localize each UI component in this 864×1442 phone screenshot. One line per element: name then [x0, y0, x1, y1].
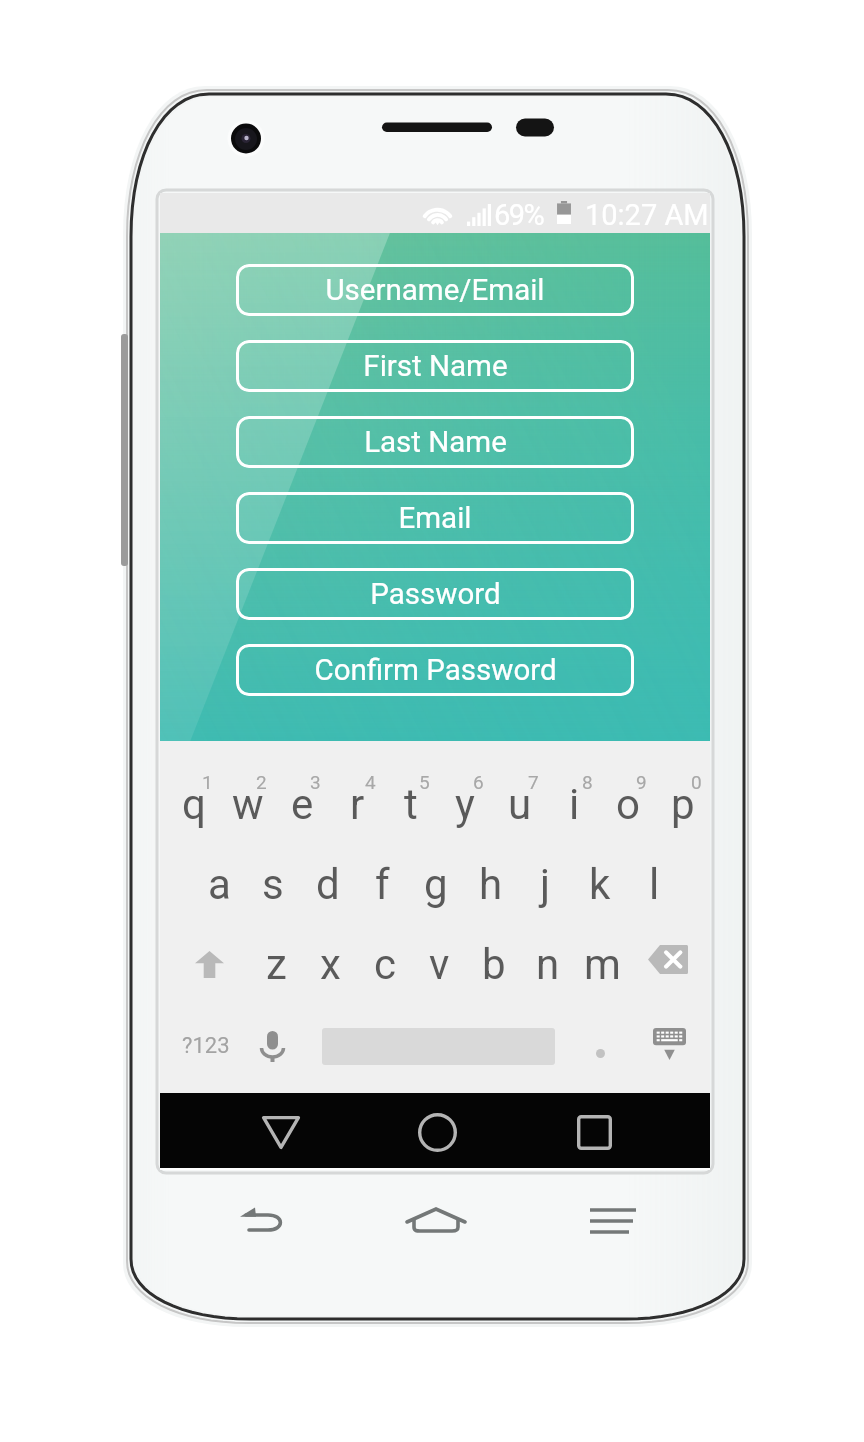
button[interactable]: Password [236, 568, 634, 620]
button[interactable]: c [358, 929, 412, 999]
button[interactable]: Shift [175, 929, 243, 999]
staticText: p [671, 780, 695, 829]
staticText: y [455, 780, 475, 829]
staticText: Password [370, 577, 501, 612]
staticText: 9 [636, 771, 647, 793]
button[interactable]: x [303, 929, 357, 999]
staticText: k [589, 860, 611, 909]
button[interactable]: v [412, 929, 466, 999]
staticText: s [262, 860, 284, 909]
staticText: x [320, 940, 341, 989]
staticText: Last Name [364, 425, 507, 460]
staticText: 69% [494, 198, 544, 232]
button[interactable]: 0 [656, 749, 710, 829]
staticText: Email [398, 501, 472, 536]
staticText: 1 [202, 771, 213, 793]
staticText: 5 [419, 771, 430, 793]
staticText: g [424, 860, 448, 909]
staticText: f [375, 860, 390, 909]
staticText: 4 [365, 771, 376, 793]
button[interactable] [570, 1018, 630, 1088]
button[interactable]: j [518, 849, 572, 919]
button[interactable]: g [409, 849, 463, 919]
staticText: Confirm Password [314, 653, 557, 688]
button[interactable]: Backspace [634, 924, 702, 994]
staticText: 0 [691, 771, 702, 793]
staticText: 6 [473, 771, 484, 793]
staticText: t [404, 780, 418, 829]
button[interactable]: 7 [493, 749, 547, 829]
button[interactable]: Confirm Password [236, 644, 634, 696]
staticText: j [540, 860, 551, 909]
staticText: ?123 [182, 1033, 230, 1059]
staticText: 7 [528, 771, 539, 793]
staticText: 2 [256, 771, 267, 793]
staticText: First Name [363, 349, 508, 384]
staticText: v [429, 940, 450, 989]
staticText: 8 [582, 771, 593, 793]
button[interactable]: Recent apps [560, 1098, 628, 1166]
button[interactable]: 4 [330, 749, 384, 829]
button[interactable]: f [355, 849, 409, 919]
staticText: w [232, 780, 264, 829]
button[interactable]: h [464, 849, 518, 919]
button[interactable]: 2 [221, 749, 275, 829]
button[interactable]: Last Name [236, 416, 634, 468]
staticText: u [508, 780, 532, 829]
button[interactable]: 6 [438, 749, 492, 829]
staticText: b [482, 940, 506, 989]
button[interactable]: 3 [275, 749, 329, 829]
staticText: a [208, 860, 231, 909]
button[interactable]: 5 [384, 749, 438, 829]
button[interactable]: Hide keyboard [247, 1098, 315, 1166]
button[interactable]: m [575, 929, 629, 999]
staticText: h [479, 860, 503, 909]
staticText: i [569, 780, 580, 829]
staticText: l [649, 860, 660, 909]
staticText: Username/Email [325, 273, 545, 308]
staticText: o [616, 780, 640, 829]
staticText: c [374, 940, 396, 989]
staticText: q [182, 780, 206, 829]
button[interactable]: b [467, 929, 521, 999]
button[interactable]: l [627, 849, 681, 919]
button[interactable]: Hide keyboard [631, 1009, 707, 1079]
button[interactable]: ?123 [168, 1011, 244, 1081]
button[interactable]: Home [403, 1098, 471, 1166]
staticText: z [266, 940, 287, 989]
button[interactable]: Email [236, 492, 634, 544]
button[interactable]: Voice input [239, 1011, 305, 1081]
staticText: m [584, 940, 621, 989]
button[interactable]: First Name [236, 340, 634, 392]
button[interactable]: a [192, 849, 246, 919]
button[interactable]: 1 [167, 749, 221, 829]
button[interactable] [318, 1011, 558, 1081]
button[interactable]: n [521, 929, 575, 999]
staticText: n [536, 940, 560, 989]
button[interactable]: 8 [547, 749, 601, 829]
button[interactable]: 9 [601, 749, 655, 829]
button[interactable]: k [573, 849, 627, 919]
staticText: 10:27 AM [585, 198, 709, 232]
staticText: r [350, 780, 365, 829]
button[interactable]: z [249, 929, 303, 999]
staticText: 3 [310, 771, 321, 793]
button[interactable]: Username/Email [236, 264, 634, 316]
staticText: d [316, 860, 340, 909]
button[interactable]: d [301, 849, 355, 919]
button[interactable]: s [246, 849, 300, 919]
staticText: e [291, 780, 314, 829]
